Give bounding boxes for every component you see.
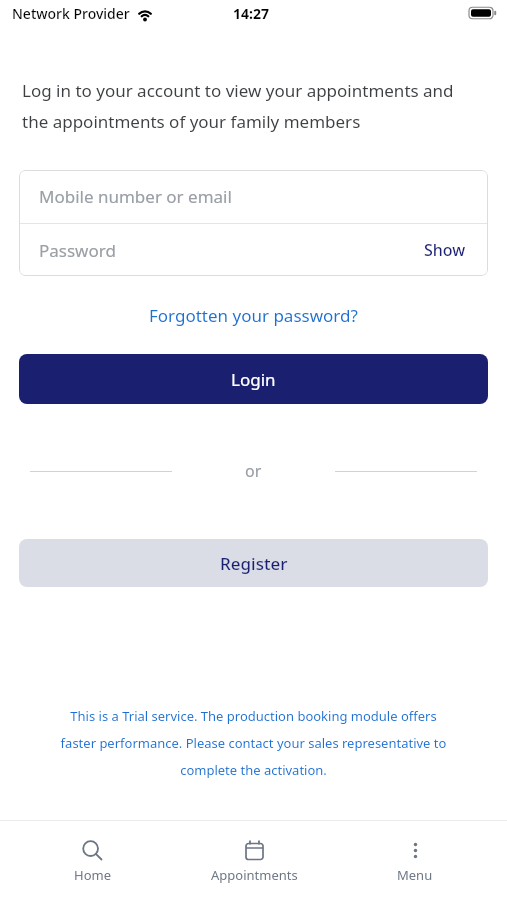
staticText: Network Provider (12, 4, 130, 23)
staticText: Log in to your account to view your appo… (22, 79, 454, 133)
staticText: Appointments (211, 866, 298, 884)
button[interactable]: Menu (355, 821, 475, 900)
button[interactable]: Register (19, 539, 488, 587)
button[interactable]: Password (19, 224, 488, 276)
button[interactable]: Home (32, 821, 152, 900)
staticText: This is a Trial service. The production … (0, 707, 507, 779)
staticText: Password (39, 239, 116, 262)
staticText: Mobile number or email (39, 185, 232, 208)
staticText: or (245, 460, 262, 482)
staticText: 14:27 (233, 4, 269, 23)
staticText: Forgotten your password? (149, 304, 358, 327)
button[interactable]: Login (19, 354, 488, 404)
staticText: Menu (397, 866, 433, 884)
button[interactable]: Forgotten your password? (0, 304, 507, 327)
staticText: Register (220, 552, 288, 575)
button[interactable]: Show (424, 239, 466, 261)
staticText: Login (231, 368, 276, 391)
button[interactable]: Appointments (194, 821, 314, 900)
button[interactable]: Mobile number or email (19, 170, 488, 223)
staticText: Home (74, 866, 111, 884)
